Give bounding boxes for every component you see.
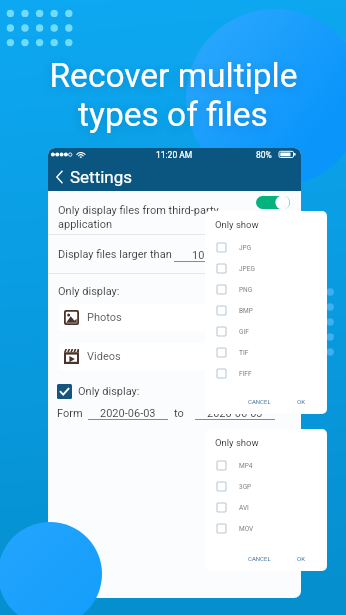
button[interactable]: JPG	[205, 237, 327, 258]
staticText: Only display:	[78, 385, 140, 398]
staticText: MOV	[239, 525, 254, 533]
staticText: 2020-06-03	[100, 407, 156, 420]
staticText: Recover multiple	[49, 56, 298, 95]
staticText: OK	[297, 398, 305, 405]
staticText: to	[174, 407, 184, 420]
button[interactable]: MP4	[205, 455, 327, 476]
staticText: CANCEL	[248, 555, 271, 562]
staticText: Only show	[215, 219, 259, 230]
staticText: PNG	[239, 286, 253, 294]
button[interactable]: CANCEL	[246, 553, 273, 564]
button[interactable]: GIF	[205, 321, 327, 342]
button[interactable]: Videos	[58, 343, 291, 370]
button[interactable]: OK	[295, 553, 307, 564]
button[interactable]: CANCEL	[246, 396, 273, 407]
button[interactable]: JPEG	[205, 258, 327, 279]
staticText: 11:20 AM	[156, 150, 193, 160]
button[interactable]: FIFF	[205, 363, 327, 384]
staticText: Videos	[87, 350, 121, 363]
button[interactable]: PNG	[205, 279, 327, 300]
staticText: Form	[57, 407, 83, 420]
staticText: FIFF	[239, 370, 252, 378]
staticText: 10	[192, 249, 205, 262]
staticText: AVI	[239, 504, 249, 512]
staticText: 3GP	[239, 483, 252, 491]
button[interactable]: MOV	[205, 518, 327, 539]
staticText: JPEG	[239, 265, 255, 273]
staticText: CANCEL	[248, 398, 271, 405]
button[interactable]: BMP	[205, 300, 327, 321]
staticText: Settings	[70, 167, 133, 187]
staticText: Only show	[215, 437, 259, 448]
staticText: 80%	[256, 150, 272, 160]
staticText: types of files	[78, 95, 268, 134]
button[interactable]: Only display:	[57, 384, 140, 399]
button[interactable]: 2020-06-03	[88, 407, 168, 420]
button[interactable]: AVI	[205, 497, 327, 518]
button[interactable]: Photos	[58, 304, 291, 331]
button[interactable]: Only display files from third-party	[48, 191, 301, 234]
button[interactable]: 3GP	[205, 476, 327, 497]
button[interactable]: OK	[295, 396, 307, 407]
staticText: 2020-06-03	[207, 407, 263, 420]
staticText: MP4	[239, 462, 253, 470]
staticText: Photos	[87, 311, 122, 324]
staticText: TIF	[239, 349, 249, 357]
staticText: GIF	[239, 328, 249, 336]
staticText: Display files larger than	[58, 248, 172, 261]
staticText: BMP	[239, 307, 253, 315]
button[interactable]: Back	[56, 165, 133, 189]
staticText: OK	[297, 555, 305, 562]
staticText: Only display files from third-party	[58, 204, 219, 217]
button[interactable]: Display files larger than	[48, 235, 301, 273]
staticText: application	[58, 218, 113, 231]
staticText: Only display:	[58, 285, 120, 298]
button[interactable]: TIF	[205, 342, 327, 363]
staticText: JPG	[239, 244, 252, 252]
button[interactable]: 2020-06-03	[195, 407, 275, 420]
